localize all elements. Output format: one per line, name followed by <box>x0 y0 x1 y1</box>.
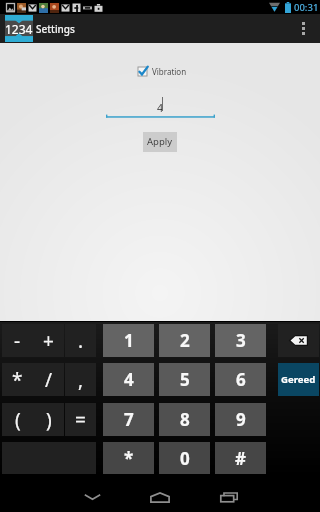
button[interactable]: Space <box>2 442 96 475</box>
button[interactable]: 0 <box>159 442 210 475</box>
button[interactable]: 9 <box>215 403 266 436</box>
button[interactable]: More options <box>286 14 320 43</box>
staticText: - <box>14 328 21 354</box>
button[interactable]: * <box>103 442 154 475</box>
button[interactable]: Home <box>131 483 189 511</box>
button[interactable]: = <box>65 403 96 436</box>
button[interactable]: 3 <box>215 324 266 357</box>
staticText: 1234 <box>5 21 33 37</box>
staticText: Vibration <box>152 66 187 77</box>
button[interactable]: . <box>65 324 96 357</box>
staticText: = <box>75 407 86 433</box>
button[interactable]: + <box>33 324 64 357</box>
staticText: # <box>235 447 246 470</box>
button[interactable]: 6 <box>215 363 266 396</box>
button[interactable]: Recent apps <box>200 483 258 511</box>
staticText: Gereed <box>281 373 316 386</box>
button[interactable]: 5 <box>159 363 210 396</box>
button[interactable]: 1 <box>103 324 154 357</box>
staticText: 6 <box>236 368 246 391</box>
staticText: 7 <box>124 408 134 431</box>
staticText: 1 <box>124 329 134 352</box>
staticText: 2 <box>180 329 190 352</box>
button[interactable]: Apply <box>143 132 177 152</box>
button[interactable]: # <box>215 442 266 475</box>
staticText: 00:31 <box>294 1 319 14</box>
button[interactable]: Gereed <box>278 363 319 396</box>
button[interactable]: - <box>2 324 33 357</box>
staticText: 0 <box>180 447 190 470</box>
button[interactable]: 4 <box>103 363 154 396</box>
staticText: / <box>45 367 53 393</box>
staticText: 3 <box>236 329 246 352</box>
button[interactable]: 8 <box>159 403 210 436</box>
button[interactable]: 4 <box>106 95 215 117</box>
button[interactable]: , <box>65 363 96 396</box>
staticText: ( <box>15 407 21 433</box>
button[interactable]: Backspace <box>278 324 319 357</box>
button[interactable]: Vibration <box>137 66 187 77</box>
staticText: Apply <box>147 135 173 148</box>
staticText: 4 <box>157 101 164 115</box>
button[interactable]: 7 <box>103 403 154 436</box>
button[interactable]: ( <box>2 403 33 436</box>
staticText: 8 <box>180 408 190 431</box>
staticText: ) <box>46 407 52 433</box>
button[interactable]: 2 <box>159 324 210 357</box>
button[interactable]: * <box>2 363 33 396</box>
staticText: Settings <box>36 22 75 36</box>
staticText: . <box>78 328 84 354</box>
staticText: 5 <box>180 368 190 391</box>
button[interactable]: Back <box>64 483 121 511</box>
staticText: * <box>12 367 23 393</box>
staticText: * <box>124 447 134 470</box>
staticText: 9 <box>236 408 246 431</box>
staticText: , <box>78 367 84 393</box>
button[interactable]: / <box>33 363 64 396</box>
staticText: + <box>43 328 54 354</box>
staticText: 4 <box>124 368 134 391</box>
button[interactable]: ) <box>33 403 64 436</box>
